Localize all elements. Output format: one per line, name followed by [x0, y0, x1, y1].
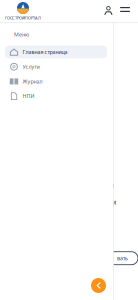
staticText: Главная страница — [22, 48, 67, 55]
staticText: ГОССТРОЙПОРТАЛ — [5, 15, 41, 20]
button[interactable]: НПИ — [5, 90, 107, 102]
staticText: Услуги — [22, 63, 39, 70]
staticText: НПИ — [22, 92, 34, 100]
staticText: Меню — [14, 31, 29, 38]
staticText: ем — [107, 198, 116, 207]
button[interactable]: Главная страница — [5, 46, 107, 58]
button[interactable]: Account — [102, 4, 115, 17]
button[interactable]: Услуги — [5, 60, 107, 73]
staticText: Журнал — [22, 78, 42, 85]
button[interactable]: Menu — [118, 5, 132, 14]
button[interactable]: Collapse menu — [91, 278, 106, 293]
staticText: ги — [107, 181, 114, 190]
button[interactable]: Журнал — [5, 75, 107, 88]
staticText: вать — [117, 255, 128, 262]
